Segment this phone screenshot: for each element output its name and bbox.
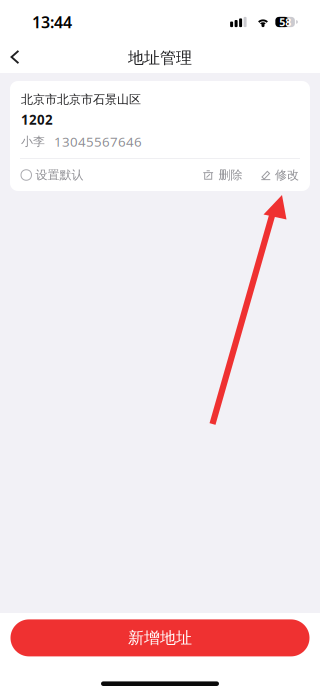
button[interactable]: 新增地址	[10, 619, 309, 656]
staticText: 小李	[21, 134, 45, 149]
staticText: 58	[279, 15, 291, 29]
button[interactable]: 设置默认	[10, 159, 91, 191]
staticText: 北京市北京市石景山区	[21, 92, 141, 107]
staticText: 设置默认	[35, 168, 83, 182]
button[interactable]: 删除	[198, 159, 248, 191]
staticText: 新增地址	[128, 628, 192, 648]
button[interactable]: 修改	[256, 159, 310, 191]
staticText: 修改	[275, 168, 299, 182]
button[interactable]: Back	[0, 43, 30, 73]
staticText: 删除	[219, 168, 243, 182]
staticText: 地址管理	[128, 48, 192, 68]
staticText: 13:44	[32, 11, 72, 33]
staticText: 1202	[21, 111, 53, 128]
staticText: 13045567646	[54, 133, 142, 150]
